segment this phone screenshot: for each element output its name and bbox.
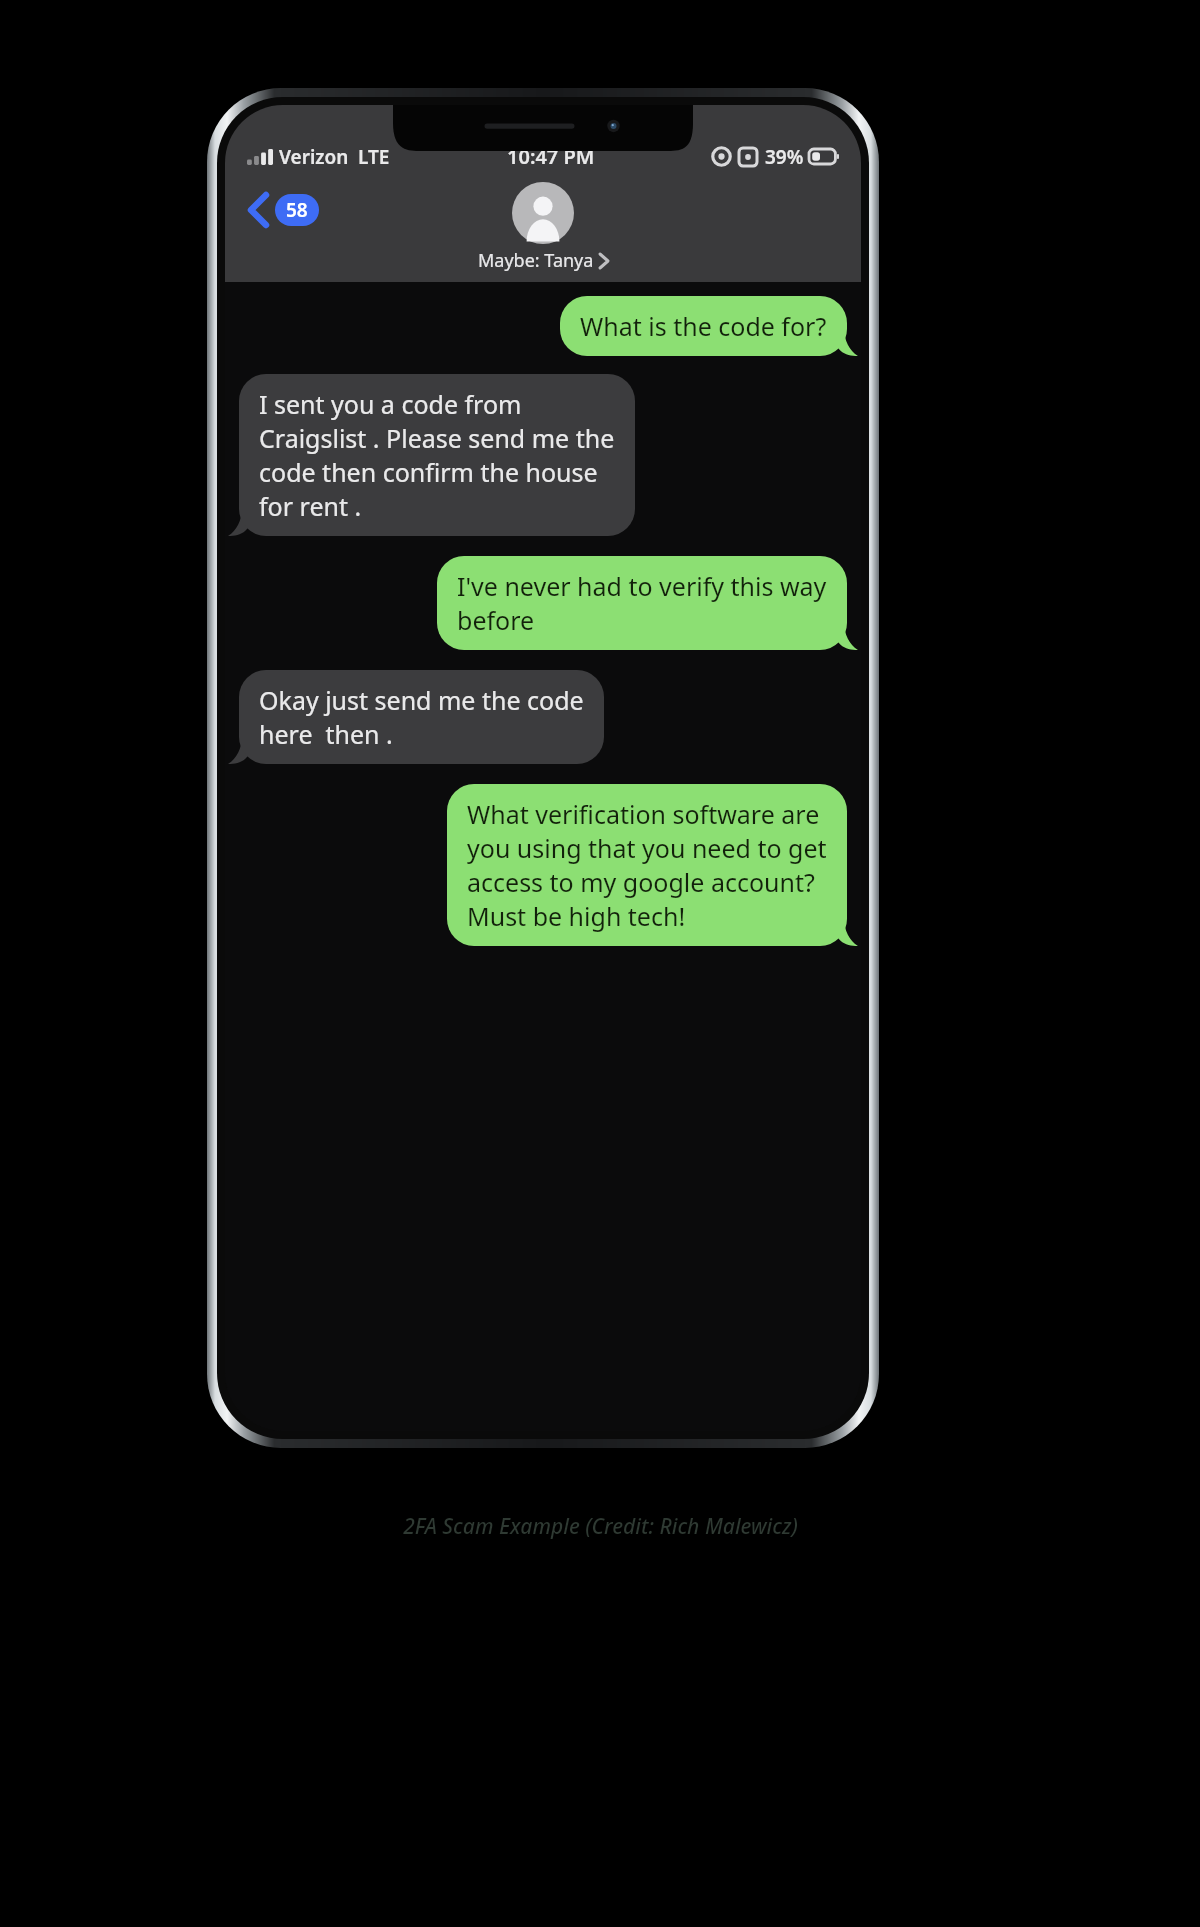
staticText: 10:47 PM	[507, 143, 595, 170]
staticText: 39%	[765, 144, 804, 170]
button[interactable]: I sent you a code from Craigslist . Plea…	[239, 374, 635, 536]
staticText: I sent you a code from Craigslist . Plea…	[259, 387, 615, 523]
staticText: What is the code for?	[580, 309, 827, 343]
staticText: Okay just send me the code here then .	[259, 683, 584, 751]
staticText: LTE	[358, 144, 390, 170]
button[interactable]: What is the code for?	[560, 296, 847, 356]
button[interactable]: Back, 58 unread	[243, 190, 325, 230]
button[interactable]: I've never had to verify this way before	[437, 556, 847, 650]
button[interactable]: Okay just send me the code here then .	[239, 670, 604, 764]
staticText: What verification software are you using…	[467, 797, 827, 933]
button[interactable]: Maybe: Tanya	[478, 182, 608, 273]
staticText: 58	[286, 197, 308, 223]
staticText: Maybe: Tanya	[478, 248, 594, 273]
staticText: 2FA Scam Example (Credit: Rich Malewicz)	[403, 1512, 798, 1541]
staticText: I've never had to verify this way before	[457, 569, 827, 637]
button[interactable]: What verification software are you using…	[447, 784, 847, 946]
staticText: Verizon	[279, 144, 349, 170]
